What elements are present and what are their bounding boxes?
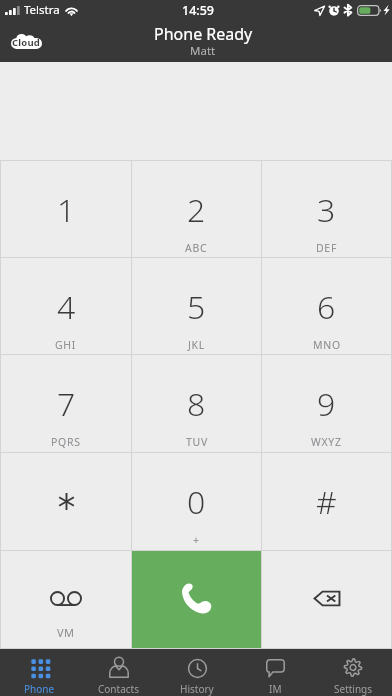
staticText: VM xyxy=(57,625,75,640)
staticText: 2 xyxy=(187,188,206,232)
staticText: 9 xyxy=(317,382,336,426)
staticText: DEF xyxy=(316,241,338,255)
staticText: 1 xyxy=(57,188,76,232)
button[interactable]: 5 xyxy=(132,258,261,354)
staticText: Matt xyxy=(190,43,216,59)
staticText: + xyxy=(193,533,200,547)
staticText: 5 xyxy=(187,285,206,329)
button[interactable]: 7 xyxy=(1,355,131,452)
staticText: 7 xyxy=(57,382,76,426)
staticText: 0 xyxy=(187,480,206,524)
button[interactable] xyxy=(1,453,131,550)
button[interactable]: IM xyxy=(236,649,314,696)
staticText: 14:59 xyxy=(182,2,215,19)
staticText: GHI xyxy=(55,338,77,352)
staticText: 3 xyxy=(317,188,336,232)
button[interactable]: Backspace xyxy=(262,551,391,648)
button[interactable]: 8 xyxy=(132,355,261,452)
button[interactable]: Phone xyxy=(0,649,79,696)
button[interactable]: Contacts xyxy=(79,649,158,696)
staticText: 6 xyxy=(317,285,336,329)
button[interactable]: 1 xyxy=(1,161,131,257)
staticText: Contacts xyxy=(98,682,139,696)
staticText: Phone Ready xyxy=(154,23,253,45)
staticText: MNO xyxy=(313,338,341,352)
staticText: JKL xyxy=(188,338,205,352)
button[interactable]: 4 xyxy=(1,258,131,354)
staticText: Cloud xyxy=(12,36,41,49)
staticText: History xyxy=(180,682,214,696)
button[interactable]: Settings xyxy=(314,649,392,696)
staticText: ABC xyxy=(185,241,208,255)
staticText: Phone xyxy=(24,682,55,696)
button[interactable]: 9 xyxy=(262,355,391,452)
staticText: Settings xyxy=(334,682,373,696)
button[interactable]: Voicemail xyxy=(1,551,131,648)
staticText: WXYZ xyxy=(311,435,342,449)
button[interactable]: 2 xyxy=(132,161,261,257)
staticText: PQRS xyxy=(51,435,81,449)
staticText: # xyxy=(316,480,337,524)
staticText: IM xyxy=(269,682,282,696)
button[interactable]: History xyxy=(158,649,236,696)
staticText: 8 xyxy=(187,382,206,426)
button[interactable]: Call xyxy=(132,551,261,648)
button[interactable]: 3 xyxy=(262,161,391,257)
button[interactable]: 0 xyxy=(132,453,261,550)
staticText: Telstra xyxy=(24,2,60,18)
button[interactable]: # xyxy=(262,453,391,550)
button[interactable]: Cloud account xyxy=(11,34,42,49)
button[interactable]: 6 xyxy=(262,258,391,354)
staticText: TUV xyxy=(186,435,208,449)
staticText: 4 xyxy=(57,285,76,329)
